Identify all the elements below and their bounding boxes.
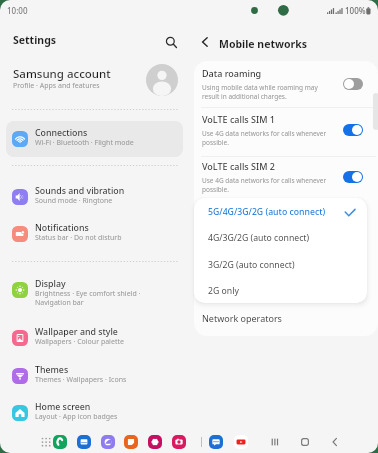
button[interactable]: Store xyxy=(148,435,162,449)
staticText: Brightness · Eye comfort shield · Naviga… xyxy=(35,289,141,307)
button[interactable]: Data roaming xyxy=(194,63,378,108)
button[interactable]: Notes xyxy=(124,435,138,449)
button[interactable]: VoLTE calls SIM 2 xyxy=(194,156,378,201)
staticText: Status bar · Do not disturb xyxy=(35,233,122,243)
button[interactable]: Display xyxy=(0,272,190,308)
button[interactable]: Samsung account xyxy=(0,60,190,100)
staticText: 100% xyxy=(345,5,366,16)
staticText: 3G/2G (auto connect) xyxy=(208,259,295,271)
staticText: Sounds and vibration xyxy=(35,185,125,197)
staticText: 5G/4G/3G/2G (auto connect) xyxy=(208,206,326,218)
staticText: Display xyxy=(35,278,66,290)
staticText: Wallpaper and style xyxy=(35,326,118,338)
staticText: Data roaming xyxy=(202,67,262,79)
staticText: Network operators xyxy=(202,312,282,324)
button[interactable]: 2G only xyxy=(194,280,367,301)
button[interactable]: 3G/2G (auto connect) xyxy=(194,254,367,275)
button[interactable]: 4G/3G/2G (auto connect) xyxy=(194,227,367,248)
button[interactable]: 5G/4G/3G/2G (auto connect) xyxy=(194,201,367,222)
button[interactable]: Notifications xyxy=(0,216,190,252)
button[interactable]: Home xyxy=(296,433,314,451)
button[interactable]: Search xyxy=(161,32,181,52)
button[interactable]: Internet xyxy=(101,435,115,449)
button[interactable]: Network operators xyxy=(194,307,378,331)
button[interactable]: Recents xyxy=(266,433,284,451)
button[interactable]: Messages xyxy=(77,435,91,449)
button[interactable]: YouTube xyxy=(234,435,248,449)
button[interactable]: Home screen xyxy=(0,395,190,431)
staticText: 10:00 xyxy=(7,5,28,16)
button[interactable]: Back xyxy=(326,433,344,451)
staticText: Samsung account xyxy=(13,66,111,82)
button[interactable]: Chat xyxy=(209,435,223,449)
staticText: Profile · Apps and features xyxy=(13,81,100,91)
staticText: Mobile networks xyxy=(219,37,308,51)
button[interactable]: Camera xyxy=(172,435,186,449)
staticText: Connections xyxy=(35,127,88,139)
staticText: Notifications xyxy=(35,222,89,234)
staticText: VoLTE calls SIM 2 xyxy=(202,160,275,172)
staticText: Wallpapers · Colour palette xyxy=(35,337,124,347)
staticText: Wi-Fi · Bluetooth · Flight mode xyxy=(35,138,134,148)
staticText: 4G/3G/2G (auto connect) xyxy=(208,232,310,244)
staticText: Use 4G data networks for calls whenever … xyxy=(202,129,327,147)
staticText: VoLTE calls SIM 1 xyxy=(202,113,275,125)
staticText: Using mobile data while roaming may resu… xyxy=(202,83,318,101)
staticText: Layout · App icon badges xyxy=(35,412,118,422)
staticText: Settings xyxy=(13,33,57,47)
button[interactable]: Themes xyxy=(0,358,190,394)
button[interactable]: Phone xyxy=(53,435,67,449)
staticText: Sound mode · Ringtone xyxy=(35,196,113,206)
staticText: Use 4G data networks for calls whenever … xyxy=(202,176,327,194)
button[interactable]: Sounds and vibration xyxy=(0,179,190,215)
button[interactable]: All apps xyxy=(39,435,53,449)
button[interactable]: Back xyxy=(195,32,215,52)
button[interactable]: VoLTE calls SIM 1 xyxy=(194,109,378,154)
button[interactable] xyxy=(6,121,183,157)
staticText: Home screen xyxy=(35,401,91,413)
staticText: Themes · Wallpapers · Icons xyxy=(35,375,127,385)
staticText: 2G only xyxy=(208,285,239,297)
button[interactable]: Wallpaper and style xyxy=(0,320,190,356)
staticText: Themes xyxy=(35,364,69,376)
